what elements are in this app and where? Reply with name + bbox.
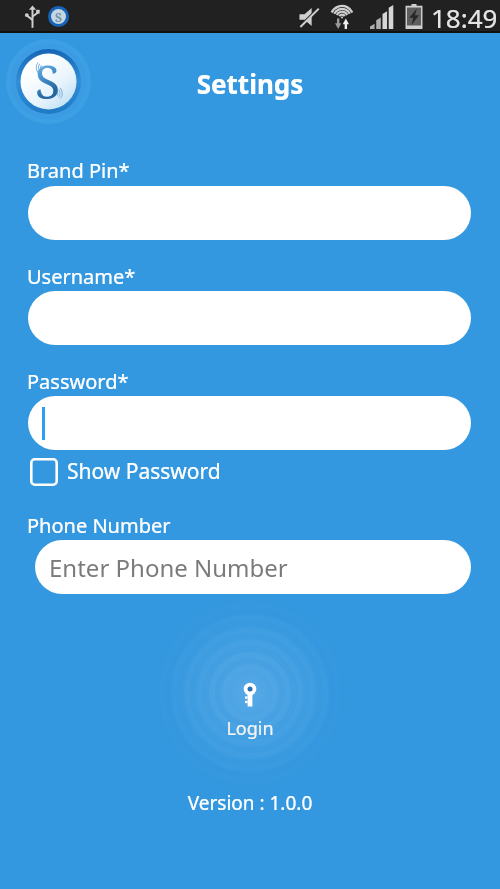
button[interactable]: [28, 396, 471, 450]
staticText: S: [55, 9, 62, 24]
staticText: Login: [180, 716, 320, 741]
staticText: Version : 1.0.0: [0, 790, 500, 816]
staticText: Show Password: [67, 457, 221, 486]
button[interactable]: Show Password: [30, 457, 221, 486]
staticText: 18:49: [431, 0, 498, 33]
staticText: Phone Number: [27, 512, 171, 539]
button[interactable]: [28, 186, 471, 240]
button[interactable]: Enter Phone Number: [35, 540, 471, 594]
button[interactable]: [28, 291, 471, 345]
staticText: Brand Pin*: [27, 157, 130, 184]
staticText: Enter Phone Number: [49, 551, 288, 584]
button[interactable]: App logo: [6, 39, 91, 124]
staticText: Settings: [0, 66, 500, 101]
staticText: Password*: [27, 368, 129, 395]
staticText: Username*: [27, 263, 136, 290]
button[interactable]: Login: [180, 650, 320, 750]
staticText: S: [35, 50, 61, 113]
